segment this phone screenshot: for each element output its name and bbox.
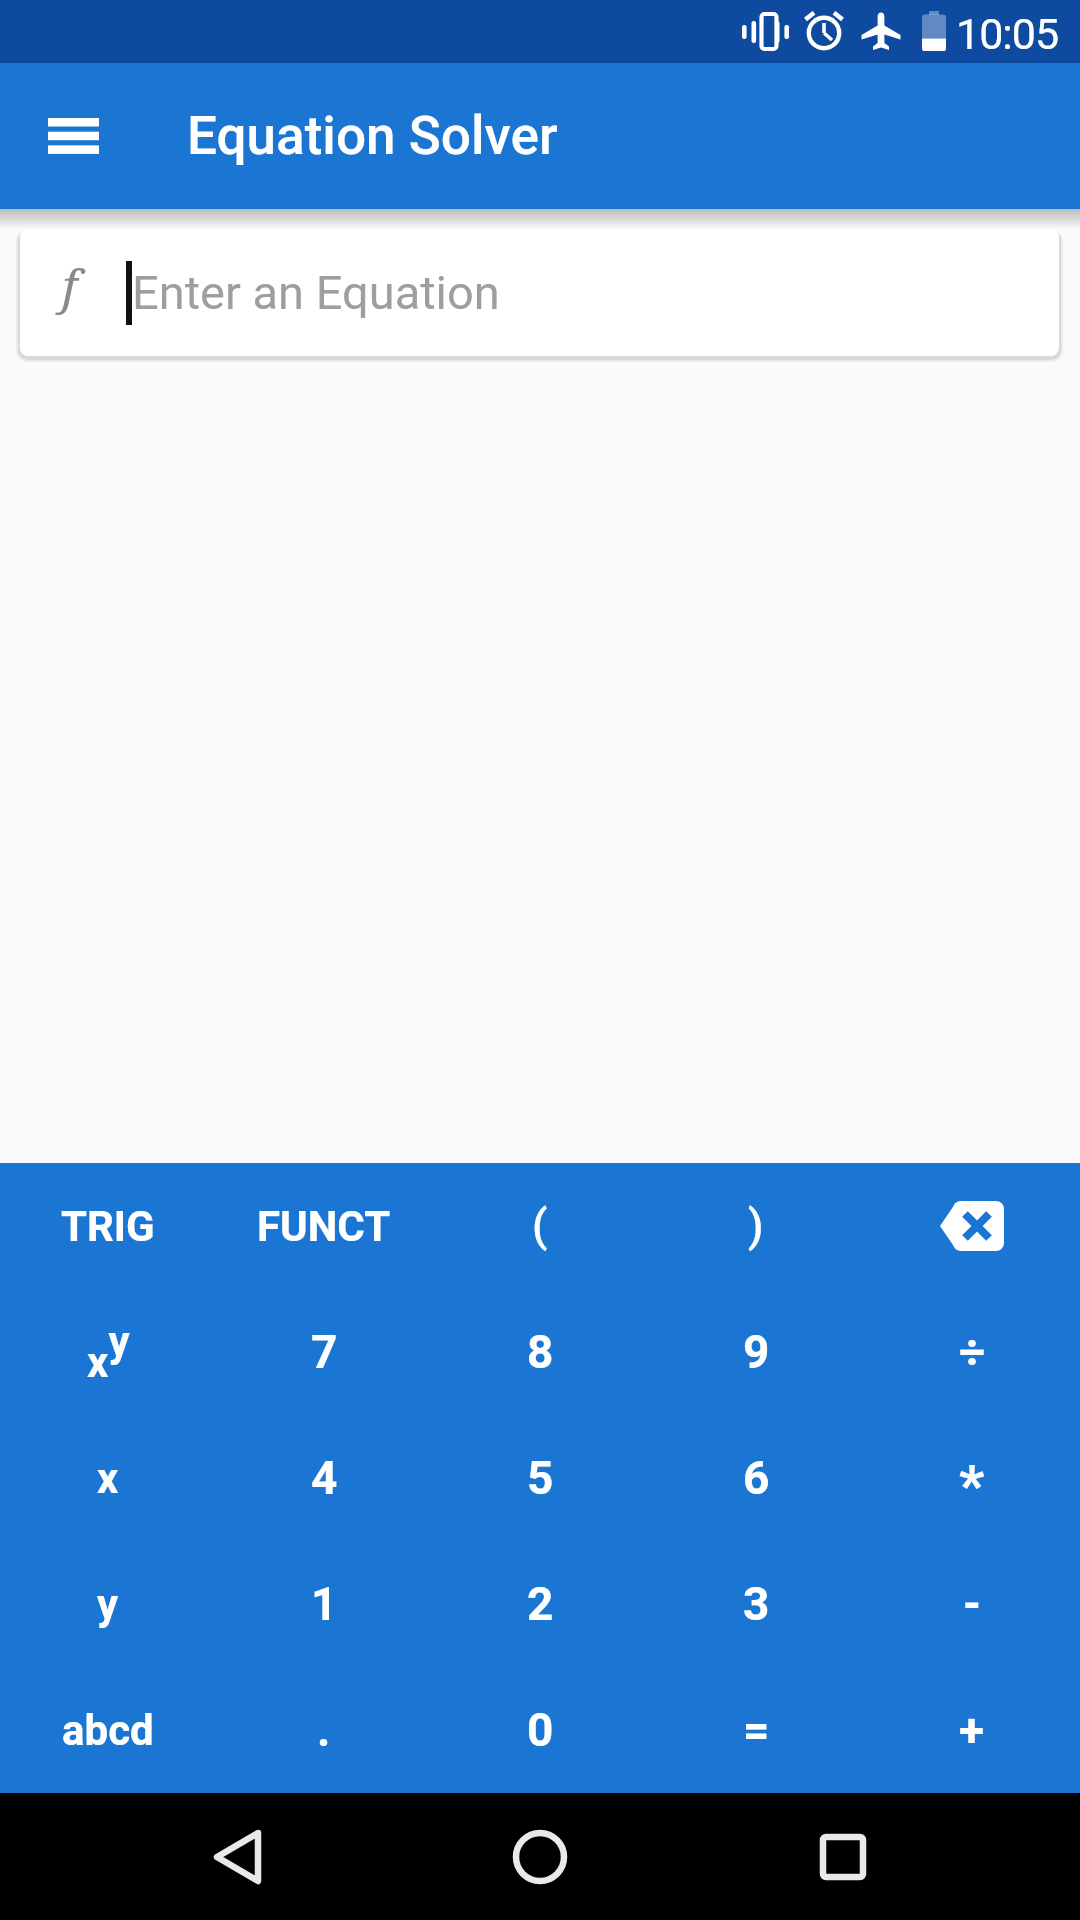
button[interactable]: 6 (648, 1415, 864, 1541)
staticText: 4 (311, 1451, 338, 1505)
button[interactable]: 5 (432, 1415, 648, 1541)
button[interactable]: x (0, 1415, 216, 1541)
staticText: y (97, 1580, 119, 1629)
staticText: 5 (527, 1451, 554, 1505)
staticText: 1 (311, 1577, 338, 1631)
button[interactable] (487, 1804, 592, 1909)
button[interactable]: . (216, 1667, 432, 1793)
button[interactable]: xy (0, 1289, 216, 1415)
button[interactable] (864, 1163, 1080, 1289)
staticText: = (743, 1703, 770, 1757)
button[interactable]: TRIG (0, 1163, 216, 1289)
staticText: 6 (743, 1451, 770, 1505)
button[interactable]: 1 (216, 1541, 432, 1667)
button[interactable]: 7 (216, 1289, 432, 1415)
staticText: - (963, 1577, 981, 1631)
staticText: Enter an Equation (132, 265, 500, 320)
staticText: 8 (527, 1325, 554, 1379)
staticText: 9 (743, 1325, 770, 1379)
button[interactable]: abcd (0, 1667, 216, 1793)
button[interactable] (185, 1804, 290, 1909)
staticText: * (959, 1453, 985, 1519)
button[interactable] (34, 97, 112, 175)
staticText: FUNCT (257, 1202, 391, 1251)
staticText: ) (748, 1200, 764, 1252)
staticText: 7 (311, 1325, 338, 1379)
button[interactable]: 3 (648, 1541, 864, 1667)
button[interactable]: * (864, 1415, 1080, 1541)
button[interactable] (790, 1804, 895, 1909)
staticText: abcd (62, 1706, 154, 1755)
button[interactable]: FUNCT (216, 1163, 432, 1289)
staticText: TRIG (61, 1202, 155, 1251)
staticText: xy (87, 1317, 130, 1388)
staticText: 3 (743, 1577, 770, 1631)
button[interactable]: 0 (432, 1667, 648, 1793)
button[interactable]: ) (648, 1163, 864, 1289)
staticText: ( (532, 1200, 548, 1252)
staticText: + (959, 1703, 985, 1757)
staticText: 2 (527, 1577, 554, 1631)
button[interactable]: 4 (216, 1415, 432, 1541)
staticText: 10:05 (956, 9, 1059, 59)
button[interactable]: y (0, 1541, 216, 1667)
staticText: f (62, 253, 78, 318)
staticText: ÷ (959, 1325, 986, 1379)
button[interactable]: 9 (648, 1289, 864, 1415)
button[interactable]: f (20, 229, 1059, 356)
button[interactable]: ÷ (864, 1289, 1080, 1415)
button[interactable]: ( (432, 1163, 648, 1289)
button[interactable]: + (864, 1667, 1080, 1793)
button[interactable]: 8 (432, 1289, 648, 1415)
staticText: . (317, 1703, 331, 1757)
button[interactable]: - (864, 1541, 1080, 1667)
staticText: x (97, 1454, 119, 1503)
button[interactable]: = (648, 1667, 864, 1793)
staticText: Equation Solver (187, 105, 558, 167)
staticText: 0 (527, 1703, 554, 1757)
button[interactable]: 2 (432, 1541, 648, 1667)
